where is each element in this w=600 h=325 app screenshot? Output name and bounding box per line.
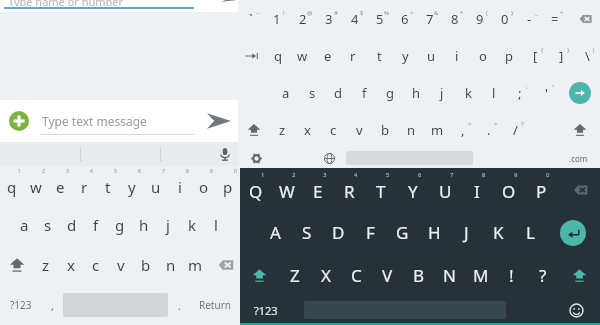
button[interactable]: f [351, 74, 377, 111]
button[interactable]: m [424, 111, 450, 148]
button[interactable]: 4 [72, 166, 96, 205]
button[interactable]: Voice input [160, 142, 240, 166]
button[interactable]: v [346, 111, 372, 148]
button[interactable]: Shift [559, 111, 600, 148]
button[interactable]: X [310, 254, 341, 297]
button[interactable]: 8 [168, 166, 192, 205]
button[interactable]: 8 [442, 0, 467, 37]
button[interactable]: 9 [467, 0, 492, 37]
button[interactable]: Z [279, 254, 310, 297]
button[interactable]: e [315, 37, 340, 74]
button[interactable]: 7 [144, 166, 168, 205]
button[interactable]: L [514, 211, 546, 254]
button[interactable]: 4 [342, 0, 367, 37]
button[interactable]: Tab [238, 37, 265, 74]
button[interactable]: 1 [240, 168, 271, 211]
button[interactable]: j [429, 74, 455, 111]
button[interactable]: s [299, 74, 325, 111]
button[interactable]: F [354, 211, 386, 254]
button[interactable]: Add attachment [6, 108, 32, 134]
button[interactable]: x [58, 245, 83, 285]
button[interactable]: / [502, 111, 528, 148]
button[interactable]: f [84, 205, 108, 245]
button[interactable]: [ [522, 37, 548, 74]
button[interactable]: s [36, 205, 60, 245]
button[interactable]: Delete [567, 0, 600, 37]
button[interactable]: ` [238, 0, 264, 37]
button[interactable]: Settings [238, 148, 274, 168]
button[interactable]: J [450, 211, 482, 254]
button[interactable]: 6 [392, 0, 417, 37]
button[interactable]: m [183, 245, 208, 285]
button[interactable]: l [204, 205, 228, 245]
button[interactable]: Change language [313, 148, 346, 168]
button[interactable]: ' [533, 74, 559, 111]
button[interactable]: S [291, 211, 322, 254]
button[interactable]: 1 [264, 0, 290, 37]
button[interactable]: ! [496, 254, 527, 297]
button[interactable]: 5 [96, 166, 120, 205]
button[interactable]: Send [218, 0, 240, 6]
button[interactable]: b [372, 111, 398, 148]
button[interactable]: 5 [367, 0, 392, 37]
button[interactable]: 8 [461, 168, 493, 211]
button[interactable]: 2 [271, 168, 302, 211]
button[interactable]: w [290, 37, 315, 74]
button[interactable]: Delete [557, 168, 600, 211]
button[interactable]: 0 [492, 0, 517, 37]
button[interactable]: 2 [290, 0, 316, 37]
button[interactable]: Emoji [553, 297, 600, 323]
button[interactable]: Delete [208, 245, 240, 285]
button[interactable]: 3 [302, 168, 333, 211]
button[interactable]: . [476, 111, 502, 148]
button[interactable]: n [158, 245, 183, 285]
button[interactable]: 0 [216, 166, 240, 205]
button[interactable]: \ [574, 37, 600, 74]
button[interactable]: b [133, 245, 158, 285]
button[interactable]: 9 [192, 166, 216, 205]
button[interactable]: = [542, 0, 567, 37]
button[interactable]: H [418, 211, 450, 254]
button[interactable]: h [132, 205, 156, 245]
button[interactable]: 4 [333, 168, 365, 211]
button[interactable]: Enter [559, 74, 600, 111]
button[interactable]: - [517, 0, 542, 37]
button[interactable]: l [481, 74, 507, 111]
button[interactable]: z [270, 111, 295, 148]
button[interactable]: c [83, 245, 108, 285]
button[interactable]: p [496, 37, 522, 74]
button[interactable]: 3 [316, 0, 342, 37]
button[interactable]: j [156, 205, 180, 245]
button[interactable]: g [108, 205, 132, 245]
button[interactable]: D [322, 211, 354, 254]
button[interactable]: g [377, 74, 403, 111]
button[interactable]: . [168, 285, 190, 325]
button[interactable]: C [341, 254, 372, 297]
button[interactable]: Shift [0, 245, 33, 285]
button[interactable]: , [41, 285, 63, 325]
button[interactable]: d [60, 205, 84, 245]
button[interactable]: t [366, 37, 392, 74]
button[interactable]: i [444, 37, 470, 74]
button[interactable]: ; [507, 74, 533, 111]
button[interactable]: Return [190, 285, 240, 325]
button[interactable]: d [325, 74, 351, 111]
button[interactable]: c [320, 111, 346, 148]
button[interactable]: 6 [120, 166, 144, 205]
button[interactable]: k [455, 74, 481, 111]
button[interactable]: V [372, 254, 403, 297]
button[interactable]: 2 [24, 166, 48, 205]
button[interactable]: z [33, 245, 58, 285]
button[interactable]: Shift [238, 111, 270, 148]
button[interactable]: h [403, 74, 429, 111]
button[interactable]: n [398, 111, 424, 148]
button[interactable]: ?123 [240, 297, 291, 323]
button[interactable]: 1 [0, 166, 24, 205]
button[interactable]: .com [556, 148, 600, 168]
button[interactable]: 3 [48, 166, 72, 205]
button[interactable]: v [108, 245, 133, 285]
button[interactable]: A [260, 211, 291, 254]
